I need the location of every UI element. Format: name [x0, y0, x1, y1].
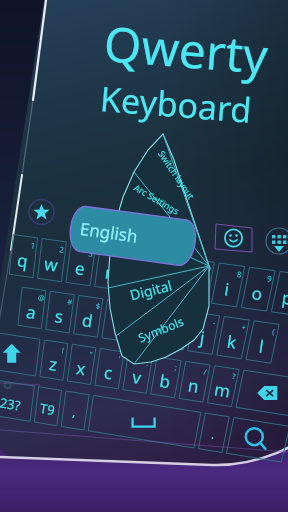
- button[interactable]: Qwerty Keyboard preview: [0, 0, 288, 512]
